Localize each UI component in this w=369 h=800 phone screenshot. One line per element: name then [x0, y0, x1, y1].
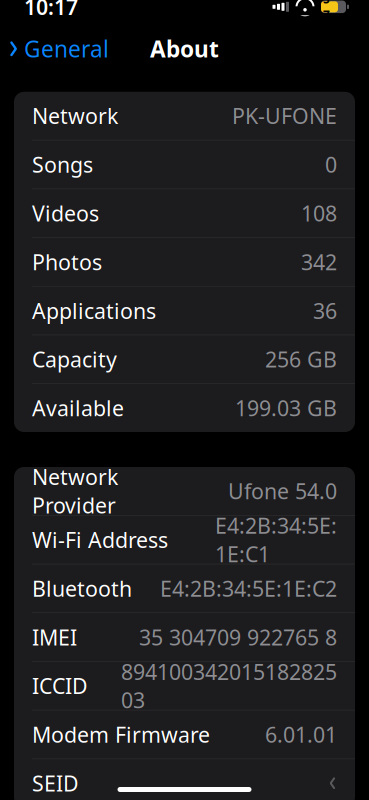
staticText: Songs [32, 150, 93, 179]
staticText: SEID [32, 769, 79, 797]
button[interactable]: IMEI [14, 613, 355, 662]
staticText: IMEI [32, 623, 77, 651]
staticText: 256 GB [265, 345, 337, 373]
staticText: Bluetooth [32, 574, 132, 602]
staticText: E4:2B:34:5E:1E:C1 [215, 511, 337, 568]
staticText: 89410034201518282503 [121, 657, 337, 714]
button[interactable]: Available [14, 384, 355, 432]
button[interactable]: Bluetooth [14, 564, 355, 613]
staticText: Ufone 54.0 [228, 477, 337, 505]
staticText: E4:2B:34:5E:1E:C2 [160, 574, 337, 602]
button[interactable]: SEID [14, 759, 355, 800]
button[interactable]: Network [14, 92, 355, 140]
staticText: Photos [32, 248, 102, 276]
staticText: Capacity [32, 345, 117, 373]
staticText: About [150, 34, 219, 64]
staticText: Wi-Fi Address [32, 525, 168, 554]
button[interactable]: General [0, 28, 109, 70]
staticText: Available [32, 394, 124, 422]
staticText: Network Provider [32, 463, 118, 519]
staticText: 10:17 [24, 0, 78, 21]
staticText: 199.03 GB [235, 394, 337, 422]
staticText: General [24, 34, 109, 64]
staticText: Videos [32, 199, 99, 227]
staticText: 108 [301, 199, 337, 227]
staticText: Applications [32, 296, 156, 325]
button[interactable]: Modem Firmware [14, 710, 355, 759]
button[interactable]: Capacity [14, 335, 355, 384]
staticText: Modem Firmware [32, 720, 210, 749]
staticText: 35 304709 922765 8 [139, 623, 337, 651]
staticText: 342 [301, 248, 337, 276]
staticText: 36 [313, 296, 337, 325]
button[interactable]: Network Provider [14, 467, 355, 516]
button[interactable]: Applications [14, 287, 355, 335]
staticText: 6.01.01 [265, 720, 337, 749]
button[interactable]: Videos [14, 189, 355, 238]
staticText: Network [32, 102, 118, 130]
staticText: 0 [325, 150, 337, 179]
staticText: ICCID [32, 672, 88, 700]
button[interactable]: Photos [14, 238, 355, 287]
button[interactable]: Songs [14, 140, 355, 189]
button[interactable]: ICCID [14, 662, 355, 710]
staticText: PK-UFONE [232, 102, 337, 130]
button[interactable]: Wi-Fi Address [14, 516, 355, 564]
staticText: 57 [323, 0, 330, 23]
